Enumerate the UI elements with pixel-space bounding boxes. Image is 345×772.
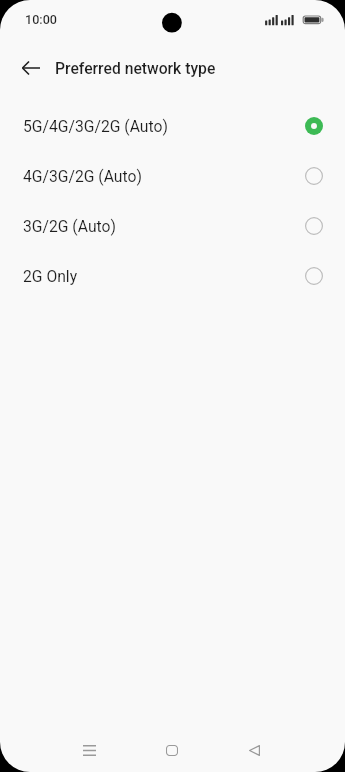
button[interactable]: 5G/4G/3G/2G (Auto) (0, 101, 345, 151)
button[interactable]: Home (130, 729, 213, 772)
button[interactable]: 3G/2G (Auto) (0, 201, 345, 251)
button[interactable]: 2G Only (0, 251, 345, 301)
button[interactable]: Back (213, 729, 296, 772)
button[interactable]: Navigate up (11, 48, 51, 88)
staticText: 4G/3G/2G (Auto) (23, 167, 305, 185)
staticText: 10:00 (25, 12, 57, 27)
staticText: 2G Only (23, 267, 305, 285)
staticText: Preferred network type (55, 59, 216, 77)
staticText: 3G/2G (Auto) (23, 217, 305, 235)
staticText: 5G/4G/3G/2G (Auto) (23, 117, 305, 135)
button[interactable]: Recent apps (48, 729, 130, 772)
button[interactable]: 4G/3G/2G (Auto) (0, 151, 345, 201)
